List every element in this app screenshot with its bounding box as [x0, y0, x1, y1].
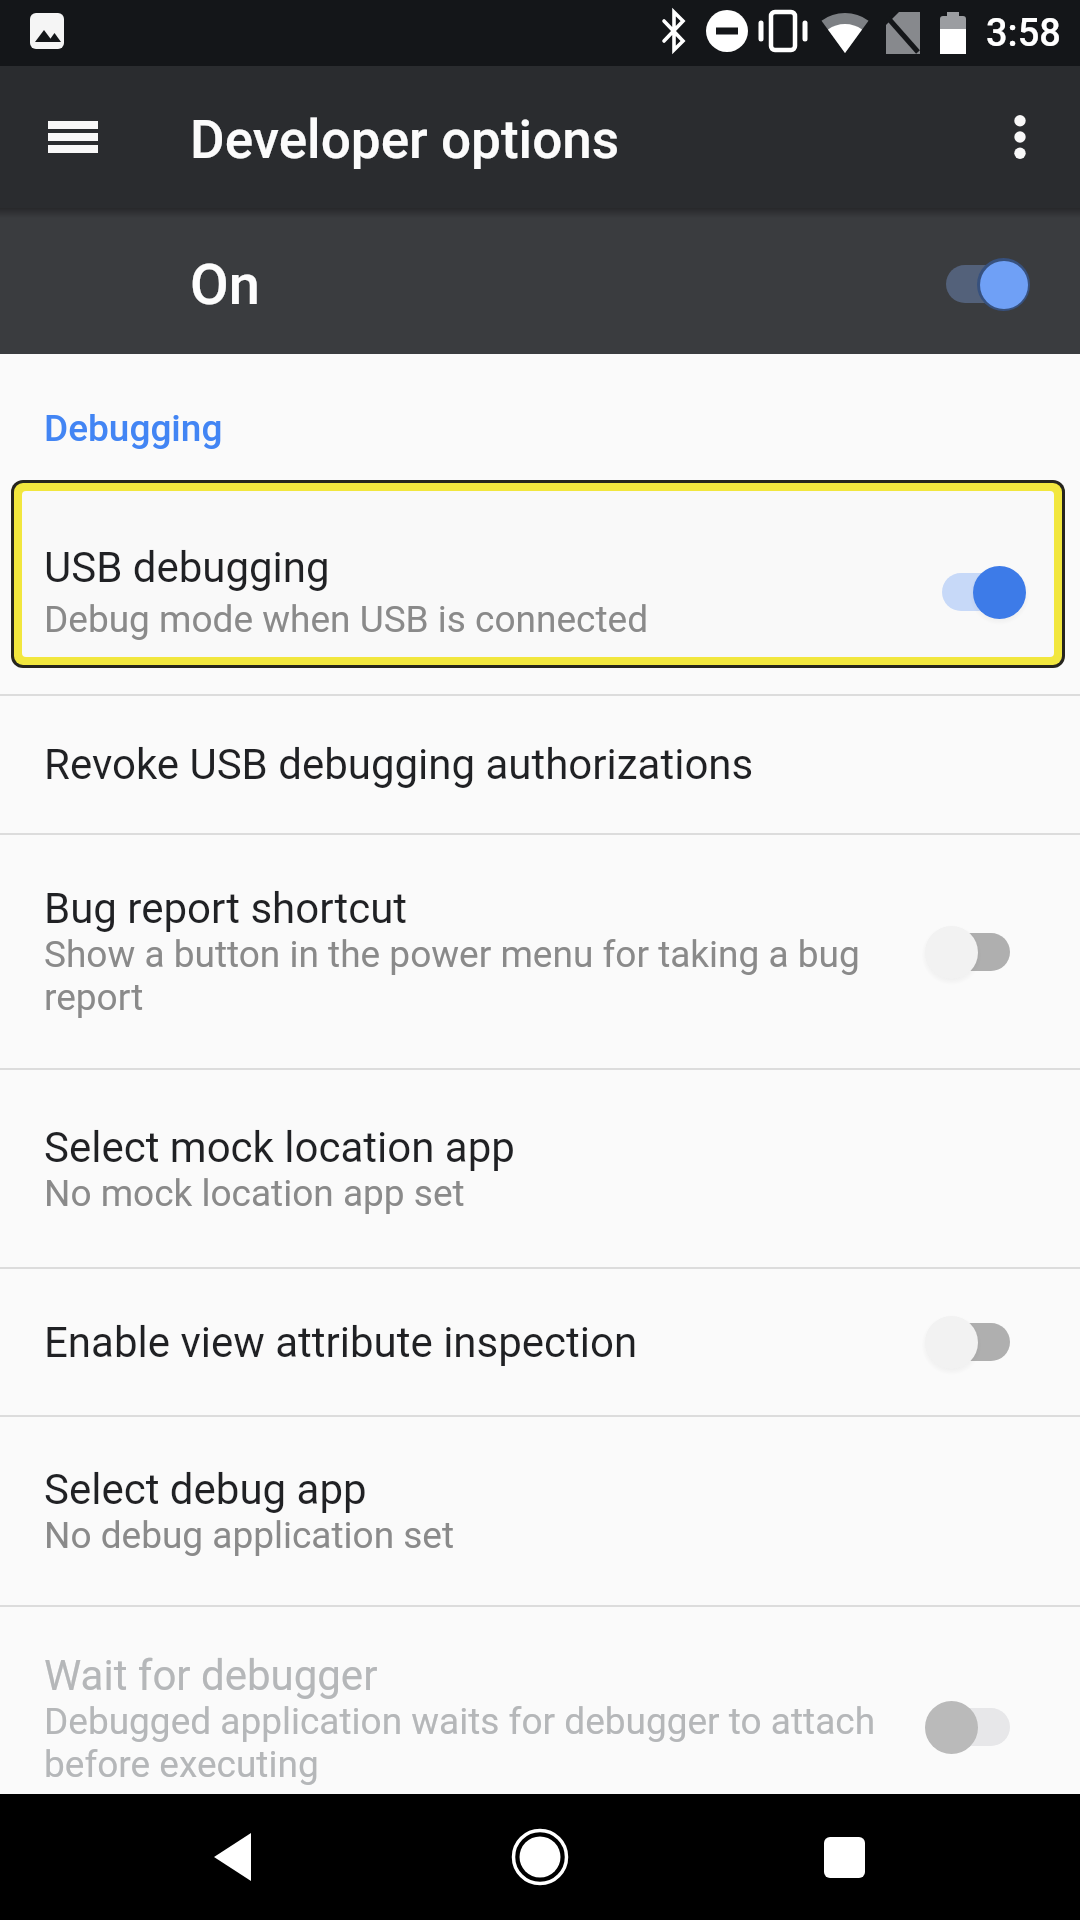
button[interactable]: USB debugging [22, 491, 1054, 657]
staticText: Developer options [190, 109, 620, 171]
staticText: No mock location app set [44, 1172, 465, 1215]
staticText: Select mock location app [44, 1123, 515, 1172]
staticText: Debug mode when USB is connected [44, 598, 649, 641]
button[interactable]: Select debug app [0, 1417, 1080, 1605]
staticText: On [190, 252, 260, 318]
staticText: Select debug app [44, 1465, 367, 1514]
button[interactable]: Revoke USB debugging authorizations [0, 696, 1080, 833]
staticText: Revoke USB debugging authorizations [44, 740, 754, 789]
staticText: Enable view attribute inspection [44, 1318, 638, 1367]
button[interactable] [784, 1794, 904, 1920]
button[interactable] [480, 1794, 600, 1920]
staticText: report [44, 976, 144, 1019]
staticText: before executing [44, 1743, 319, 1786]
button[interactable] [990, 97, 1050, 177]
staticText: Debugged application waits for debugger … [44, 1700, 876, 1743]
staticText: USB debugging [44, 543, 330, 592]
button[interactable] [34, 102, 112, 172]
button[interactable]: Bug report shortcut [0, 835, 1080, 1068]
button[interactable]: Wait for debugger [0, 1607, 1080, 1794]
staticText: Show a button in the power menu for taki… [44, 933, 860, 976]
staticText: No debug application set [44, 1514, 455, 1557]
staticText: Bug report shortcut [44, 884, 408, 933]
staticText: Wait for debugger [44, 1651, 378, 1700]
button[interactable]: On [0, 208, 1080, 354]
button[interactable] [172, 1794, 292, 1920]
staticText: Debugging [44, 407, 223, 450]
staticText: 3:58 [986, 11, 1061, 56]
button[interactable]: Enable view attribute inspection [0, 1269, 1080, 1415]
button[interactable]: Select mock location app [0, 1070, 1080, 1267]
